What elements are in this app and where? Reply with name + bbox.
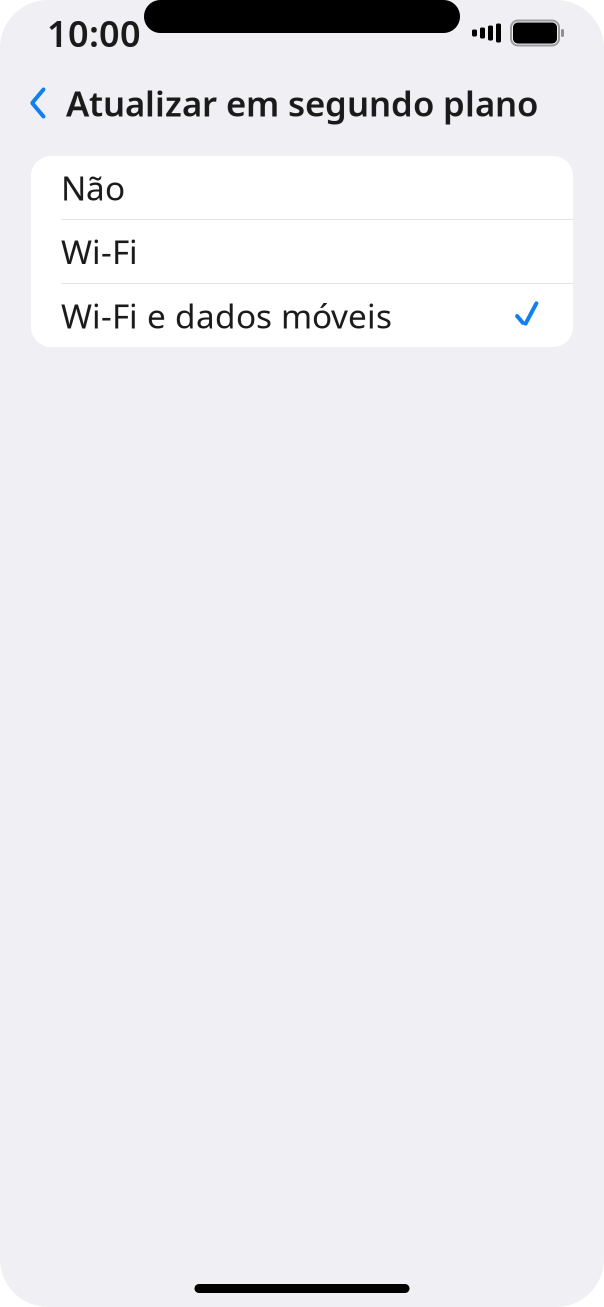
button[interactable]: Wi‑Fi e dados móveis	[31, 284, 573, 347]
button[interactable]: Wi‑Fi	[31, 220, 573, 283]
button[interactable]: Voltar	[10, 75, 66, 131]
staticText: Wi‑Fi	[61, 229, 138, 274]
button[interactable]: Não	[31, 156, 573, 219]
staticText: 10:00	[47, 9, 141, 57]
staticText: Atualizar em segundo plano	[66, 80, 538, 126]
staticText: Não	[61, 165, 125, 210]
staticText: Wi‑Fi e dados móveis	[61, 293, 392, 338]
